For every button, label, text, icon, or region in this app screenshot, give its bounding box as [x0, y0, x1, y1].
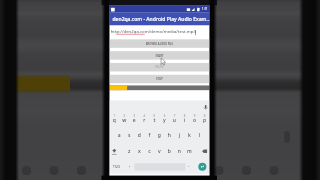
button[interactable]: Stop — [109, 75, 209, 83]
button[interactable]: den2qa.com - Android Play Audio Example — [109, 13, 209, 26]
button[interactable]: Audio url — [109, 27, 209, 35]
button[interactable]: Voice input — [201, 103, 210, 113]
button[interactable]: Playback position — [109, 85, 209, 90]
button[interactable]: Start — [109, 51, 209, 59]
button[interactable]: Enter — [198, 162, 208, 172]
button[interactable]: Pause — [109, 63, 209, 71]
button[interactable]: Browse audio file — [109, 39, 209, 47]
